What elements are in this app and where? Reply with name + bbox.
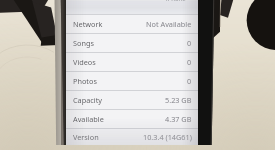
staticText: 5.23 GB xyxy=(165,95,192,105)
staticText: Available xyxy=(73,114,104,124)
staticText: 0 xyxy=(187,57,192,67)
staticText: Songs xyxy=(73,38,94,48)
button[interactable]: iPhone xyxy=(66,0,198,1)
button[interactable]: Videos xyxy=(66,53,198,71)
button[interactable]: Network xyxy=(66,15,198,33)
staticText: 10.3.4 (14G61) xyxy=(143,132,192,142)
staticText: 4.37 GB xyxy=(165,114,192,124)
button[interactable]: Available xyxy=(66,110,198,128)
staticText: Version xyxy=(73,132,99,142)
staticText: Not Available xyxy=(146,19,192,29)
staticText: 0 xyxy=(187,76,192,86)
button[interactable]: Photos xyxy=(66,72,198,90)
staticText: iPhone xyxy=(166,0,186,1)
staticText: Capacity xyxy=(73,95,103,105)
staticText: Videos xyxy=(73,57,96,67)
button[interactable]: Version xyxy=(66,129,198,145)
button[interactable]: Capacity xyxy=(66,91,198,109)
staticText: 0 xyxy=(187,38,192,48)
button[interactable]: Songs xyxy=(66,34,198,52)
staticText: Network xyxy=(73,19,103,29)
staticText: Photos xyxy=(73,76,97,86)
